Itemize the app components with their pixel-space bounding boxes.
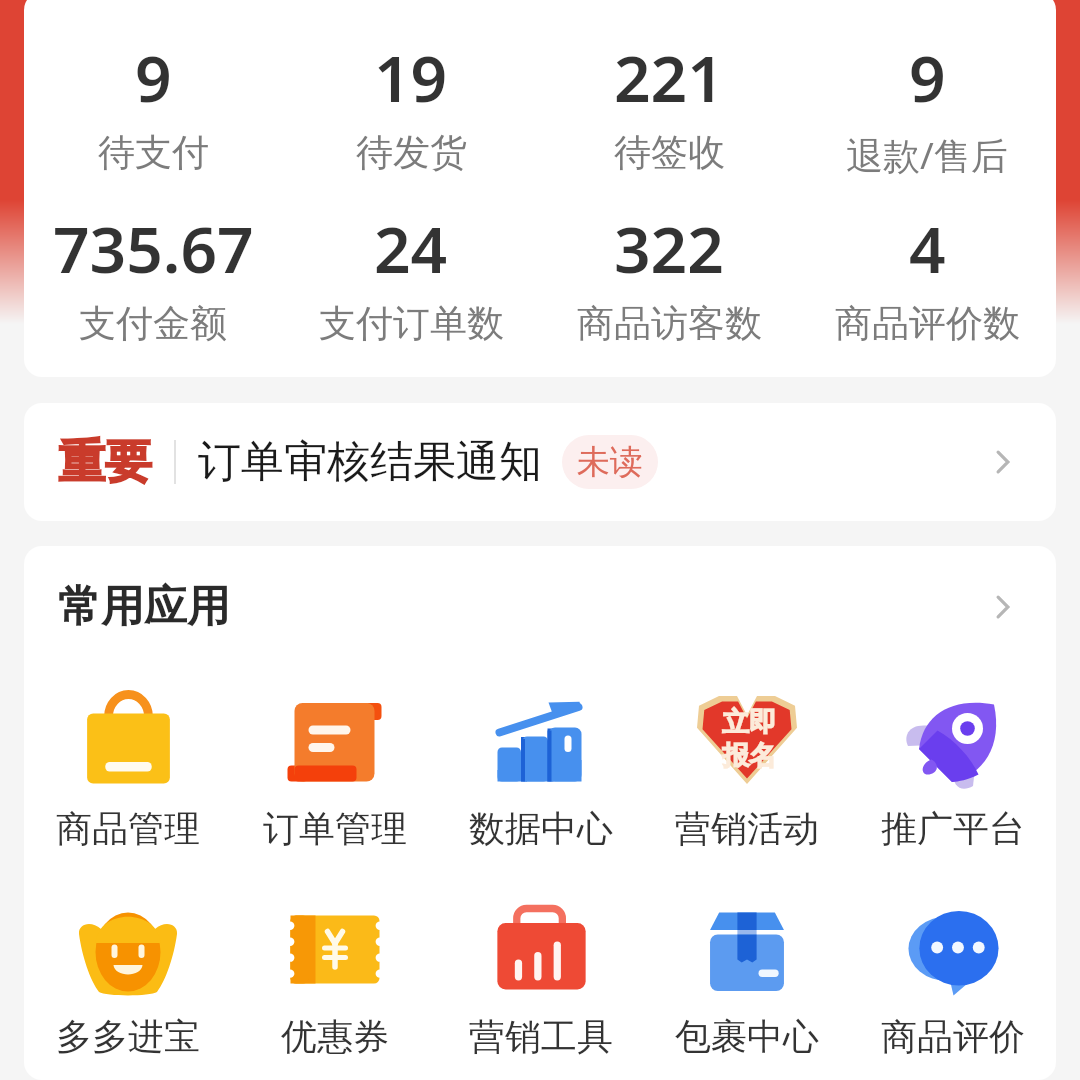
button[interactable]: 营销工具 [438,898,644,1059]
button[interactable]: 4 [798,205,1056,347]
staticText: 24 [374,205,448,292]
staticText: 19 [374,34,448,121]
button[interactable]: 322 [540,205,798,347]
other: More [996,450,1010,474]
staticText: 待签收 [614,129,725,176]
staticText: 订单审核结果通知 [198,435,542,489]
button[interactable]: 重要 [24,403,1056,521]
button[interactable]: 包裹中心 [644,898,850,1059]
staticText: 数据中心 [469,806,613,851]
staticText: 退款/售后 [846,129,1008,180]
staticText: 支付金额 [79,300,227,347]
button[interactable]: 735.67 [24,205,282,347]
staticText: 常用应用 [58,580,230,634]
staticText: 未读 [577,441,643,483]
button[interactable]: 9 [24,34,282,176]
other: More [996,595,1010,619]
staticText: 推广平台 [881,806,1025,851]
staticText: 订单管理 [263,806,407,851]
button[interactable]: 多多进宝 [24,898,231,1059]
button[interactable]: 优惠券 [231,898,438,1059]
staticText: 营销活动 [675,806,819,851]
staticText: 商品评价 [881,1014,1025,1059]
button[interactable]: 推广平台 [850,690,1056,851]
button[interactable]: 数据中心 [438,690,644,851]
staticText: 9 [909,34,946,121]
button[interactable]: 9 [798,34,1056,180]
button[interactable]: 常用应用 [58,580,1010,634]
staticText: 重要 [58,433,152,492]
staticText: 报名 [722,739,776,773]
button[interactable]: 24 [282,205,540,347]
staticText: 营销工具 [469,1014,613,1059]
staticText: 商品管理 [56,806,200,851]
staticText: 商品访客数 [577,300,762,347]
staticText: 4 [909,205,946,292]
staticText: 立即 [722,705,776,739]
button[interactable]: 订单管理 [231,690,438,851]
staticText: 待支付 [98,129,209,176]
button[interactable]: 19 [282,34,540,176]
staticText: 待发货 [356,129,467,176]
staticText: 优惠券 [281,1014,389,1059]
staticText: 支付订单数 [319,300,504,347]
button[interactable]: 立即 [644,690,850,851]
button[interactable]: 商品评价 [850,898,1056,1059]
button[interactable]: 商品管理 [24,690,231,851]
staticText: 322 [614,205,724,292]
staticText: 735.67 [53,205,254,292]
staticText: 多多进宝 [56,1014,200,1059]
staticText: 商品评价数 [835,300,1020,347]
staticText: 221 [614,34,724,121]
button[interactable]: 221 [540,34,798,176]
staticText: 包裹中心 [675,1014,819,1059]
staticText: 9 [135,34,172,121]
